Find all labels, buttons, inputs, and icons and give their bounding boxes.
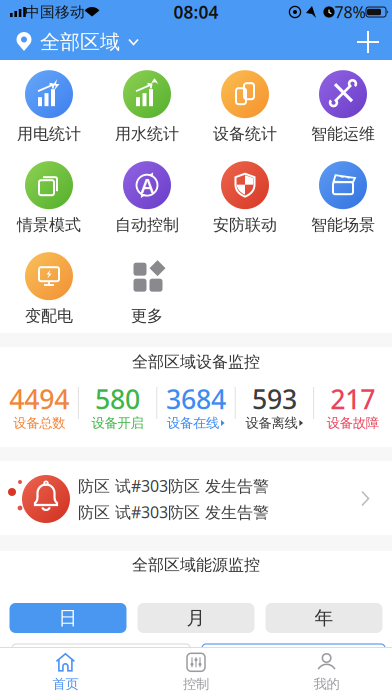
staticText: 设备开启 <box>92 415 144 431</box>
staticText: 593 <box>252 381 297 417</box>
staticText: 设备统计 <box>213 124 277 144</box>
button[interactable]: 用水统计 <box>98 72 196 142</box>
button[interactable]: 3684 <box>157 347 235 447</box>
staticText: 控制 <box>183 676 209 692</box>
staticText: 变配电 <box>25 306 73 326</box>
staticText: 防区 试#303防区 发生告警 <box>78 501 269 523</box>
staticText: 08:04 <box>173 0 218 23</box>
staticText: 安防联动 <box>213 215 277 235</box>
button[interactable]: 580 <box>78 347 157 447</box>
staticText: 设备故障 <box>327 415 379 431</box>
staticText: 智能场景 <box>311 215 375 235</box>
staticText: 智能运维 <box>311 124 375 144</box>
staticText: 设备离线 <box>245 415 297 431</box>
staticText: 情景模式 <box>17 215 81 235</box>
staticText: 首页 <box>52 676 78 692</box>
button[interactable]: 开始日期 <box>12 644 190 672</box>
staticText: 自动控制 <box>115 215 179 235</box>
staticText: 我的 <box>314 676 340 692</box>
staticText: 3684 <box>166 381 226 417</box>
staticText: 设备总数 <box>13 415 65 431</box>
staticText: 全部区域设备监控 <box>132 352 260 372</box>
button[interactable]: 智能场景 <box>294 163 392 233</box>
staticText: 中国移动 <box>25 3 85 21</box>
button[interactable]: 结束日期 <box>202 644 385 672</box>
button[interactable]: 全部区域 <box>0 24 180 60</box>
button[interactable]: 月 <box>137 603 254 633</box>
staticText: 日 <box>58 606 77 629</box>
button[interactable]: 添加 <box>354 28 382 56</box>
button[interactable]: 智能运维 <box>294 72 392 142</box>
button[interactable]: 情景模式 <box>0 163 98 233</box>
button[interactable]: 4494 <box>0 347 78 447</box>
button[interactable]: 593 <box>235 347 314 447</box>
staticText: 全部区域 <box>40 30 120 54</box>
button[interactable]: 首页 <box>0 648 131 696</box>
button[interactable]: 日 <box>9 603 126 633</box>
staticText: 用电统计 <box>17 124 81 144</box>
button[interactable]: 安防联动 <box>196 163 294 233</box>
staticText: A <box>140 172 153 198</box>
button[interactable]: 变配电 <box>0 254 98 324</box>
staticText: 217 <box>330 381 375 417</box>
staticText: 4494 <box>9 381 69 417</box>
staticText: 防区 试#303防区 发生告警 <box>78 475 269 496</box>
staticText: 78% <box>334 1 365 23</box>
button[interactable]: 用电统计 <box>0 72 98 142</box>
button[interactable]: A <box>98 163 196 233</box>
button[interactable]: 设备统计 <box>196 72 294 142</box>
staticText: 设备在线 <box>167 415 219 431</box>
staticText: 用水统计 <box>115 124 179 144</box>
staticText: 更多 <box>131 306 163 326</box>
button[interactable]: 我的 <box>261 648 392 696</box>
staticText: 全部区域能源监控 <box>132 555 260 575</box>
staticText: 年 <box>314 606 333 629</box>
button[interactable]: 控制 <box>131 648 261 696</box>
button[interactable]: 217 <box>314 347 392 447</box>
staticText: 580 <box>95 381 140 417</box>
button[interactable]: 更多 <box>98 254 196 324</box>
button[interactable]: 年 <box>265 603 382 633</box>
staticText: 月 <box>186 606 205 629</box>
button[interactable]: 防区 试#303防区 发生告警 <box>0 461 392 535</box>
